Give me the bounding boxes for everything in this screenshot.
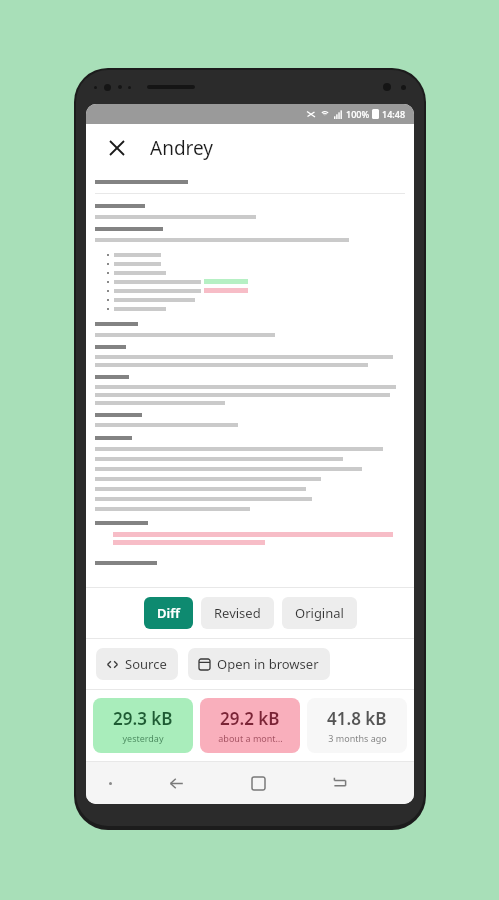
button[interactable]: Recents <box>299 762 381 804</box>
staticText: Open in browser <box>217 655 319 673</box>
staticText: 3 months ago <box>328 732 387 744</box>
staticText: 29.2 kB <box>220 707 280 730</box>
button[interactable]: Revised <box>201 597 274 629</box>
staticText: Andrey <box>150 135 214 161</box>
staticText: 29.3 kB <box>113 707 173 730</box>
button[interactable]: 41.8 kB <box>307 698 407 753</box>
staticText: Diff <box>157 604 180 622</box>
button[interactable]: Diff <box>144 597 193 629</box>
staticText: Revised <box>214 604 261 622</box>
staticText: 41.8 kB <box>327 707 387 730</box>
button[interactable]: Source <box>96 648 178 680</box>
staticText: 14:48 <box>382 108 406 120</box>
button[interactable]: Home <box>217 762 299 804</box>
button[interactable]: Back <box>135 762 217 804</box>
button[interactable]: 29.2 kB <box>200 698 300 753</box>
staticText: about a mont… <box>218 732 283 744</box>
staticText: yesterday <box>122 732 164 744</box>
button[interactable]: Open in browser <box>188 648 330 680</box>
staticText: Source <box>125 655 167 673</box>
staticText: Original <box>295 604 344 622</box>
staticText: 100% <box>346 108 370 120</box>
button[interactable]: Close <box>100 131 134 165</box>
button[interactable]: 29.3 kB <box>93 698 193 753</box>
button[interactable]: Original <box>282 597 357 629</box>
